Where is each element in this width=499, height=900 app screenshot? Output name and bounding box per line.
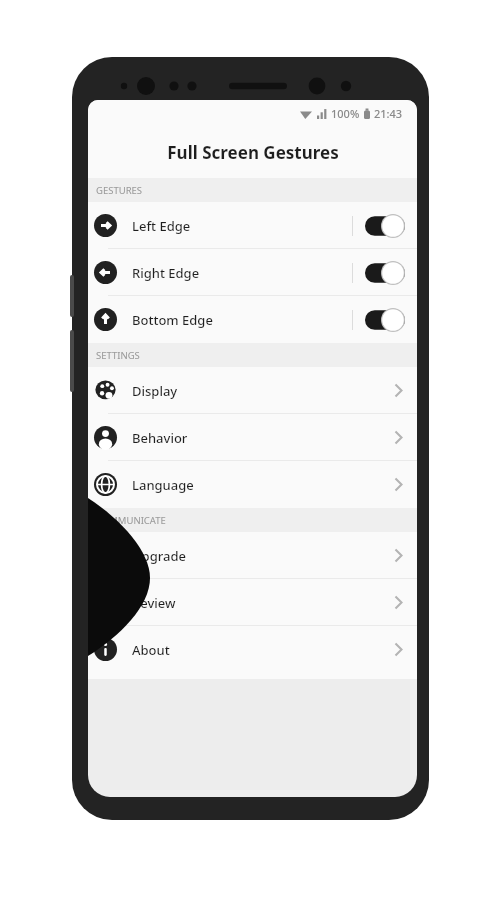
- staticText: GESTURES: [96, 184, 143, 197]
- staticText: Upgrade: [132, 547, 186, 565]
- button[interactable]: Left Edge: [88, 202, 417, 249]
- staticText: COMMUNICATE: [96, 514, 166, 527]
- button[interactable]: Language: [88, 461, 417, 508]
- staticText: Bottom Edge: [132, 311, 213, 329]
- staticText: 100%: [331, 106, 360, 121]
- button[interactable]: About: [88, 626, 417, 673]
- button[interactable]: Display: [88, 367, 417, 414]
- button[interactable]: Right Edge: [88, 249, 417, 296]
- staticText: Language: [132, 476, 194, 494]
- staticText: SETTINGS: [96, 349, 140, 362]
- button[interactable]: Upgrade: [88, 532, 417, 579]
- staticText: Review: [132, 594, 176, 612]
- staticText: Display: [132, 382, 178, 400]
- button[interactable]: Bottom Edge: [88, 296, 417, 343]
- button[interactable]: Behavior: [88, 414, 417, 461]
- button[interactable]: Review: [88, 579, 417, 626]
- staticText: 21:43: [374, 106, 403, 121]
- staticText: Right Edge: [132, 264, 200, 282]
- staticText: About: [132, 641, 170, 659]
- staticText: Left Edge: [132, 217, 191, 235]
- staticText: Full Screen Gestures: [167, 141, 339, 164]
- staticText: Behavior: [132, 429, 188, 447]
